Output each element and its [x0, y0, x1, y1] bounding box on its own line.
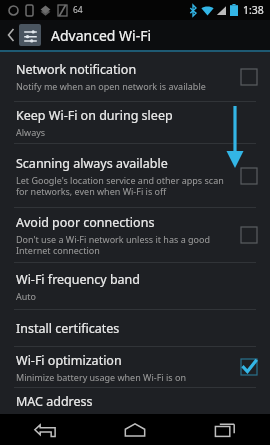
button[interactable]: Wi-Fi frequency band [0, 263, 270, 309]
button[interactable]: Home [90, 414, 180, 445]
staticText: Always [16, 126, 46, 138]
button[interactable]: Toggle [238, 165, 260, 187]
button[interactable]: Keep Wi-Fi on during sleep [0, 102, 270, 143]
button[interactable]: MAC address [0, 388, 270, 414]
staticText: Avoid poor connections [16, 214, 155, 231]
button[interactable]: Scanning always available [0, 144, 270, 207]
button[interactable]: Wi-Fi optimization [0, 347, 270, 387]
staticText: Let Google's location service and other … [16, 174, 230, 197]
staticText: Install certificates [16, 320, 120, 337]
staticText: Scanning always available [16, 155, 168, 172]
button[interactable]: Recents [180, 414, 270, 445]
staticText: Keep Wi-Fi on during sleep [16, 107, 173, 124]
staticText: MAC address [16, 393, 93, 410]
staticText: 64 [73, 4, 83, 16]
button[interactable]: Install certificates [0, 310, 270, 346]
staticText: Notify me when an open network is availa… [16, 80, 206, 92]
staticText: Wi-Fi optimization [16, 352, 122, 369]
button[interactable]: Network notification [0, 52, 270, 101]
button[interactable]: Avoid poor connections [0, 208, 270, 262]
staticText: Don't use a Wi-Fi network unless it has … [16, 233, 230, 256]
staticText: 1:38 [243, 3, 264, 17]
staticText: Minimize battery usage when Wi-Fi is on [16, 371, 186, 383]
staticText: Advanced Wi-Fi [51, 26, 152, 45]
staticText: Wi-Fi frequency band [16, 271, 141, 288]
button[interactable]: Back [0, 20, 270, 50]
button[interactable]: Back [0, 414, 90, 445]
other: Back [6, 27, 16, 43]
staticText: Auto [16, 290, 37, 302]
button[interactable]: Toggle [238, 356, 260, 378]
button[interactable]: Toggle [238, 224, 260, 246]
staticText: Network notification [16, 61, 137, 78]
button[interactable]: Toggle [238, 66, 260, 88]
